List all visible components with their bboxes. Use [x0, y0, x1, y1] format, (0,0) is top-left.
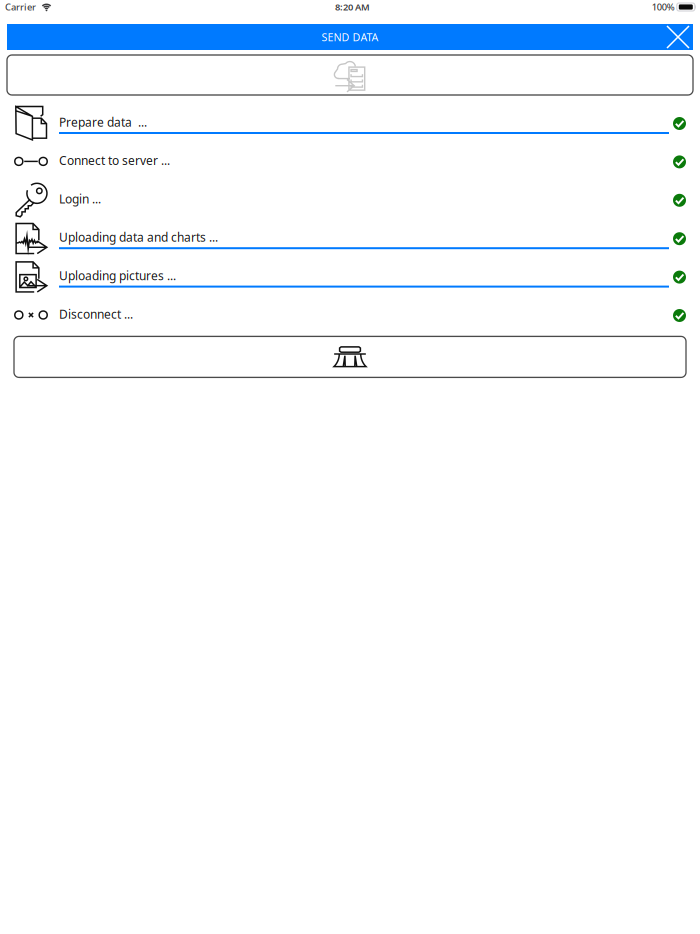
staticText: Carrier	[5, 1, 36, 13]
staticText: Uploading data and charts ...	[59, 229, 218, 245]
button[interactable]: Close	[663, 24, 693, 50]
button[interactable]: Connect to server ...	[0, 151, 700, 190]
button[interactable]: Login ...	[0, 190, 700, 228]
staticText: 8:20 AM	[335, 1, 370, 13]
staticText: Prepare data ...	[59, 114, 147, 130]
button[interactable]: Uploading data and charts ...	[0, 228, 700, 267]
button[interactable]: Uploading pictures ...	[0, 267, 700, 305]
button[interactable]: Prepare data ...	[0, 113, 700, 151]
button[interactable]: Disconnect ...	[0, 305, 700, 343]
staticText: 100%	[652, 1, 675, 13]
staticText: Login ...	[59, 191, 101, 207]
staticText: Connect to server ...	[59, 152, 170, 168]
staticText: SEND DATA	[321, 30, 378, 44]
staticText: Disconnect ...	[59, 306, 133, 322]
button[interactable]: Clear data	[14, 336, 686, 377]
staticText: Uploading pictures ...	[59, 268, 176, 283]
